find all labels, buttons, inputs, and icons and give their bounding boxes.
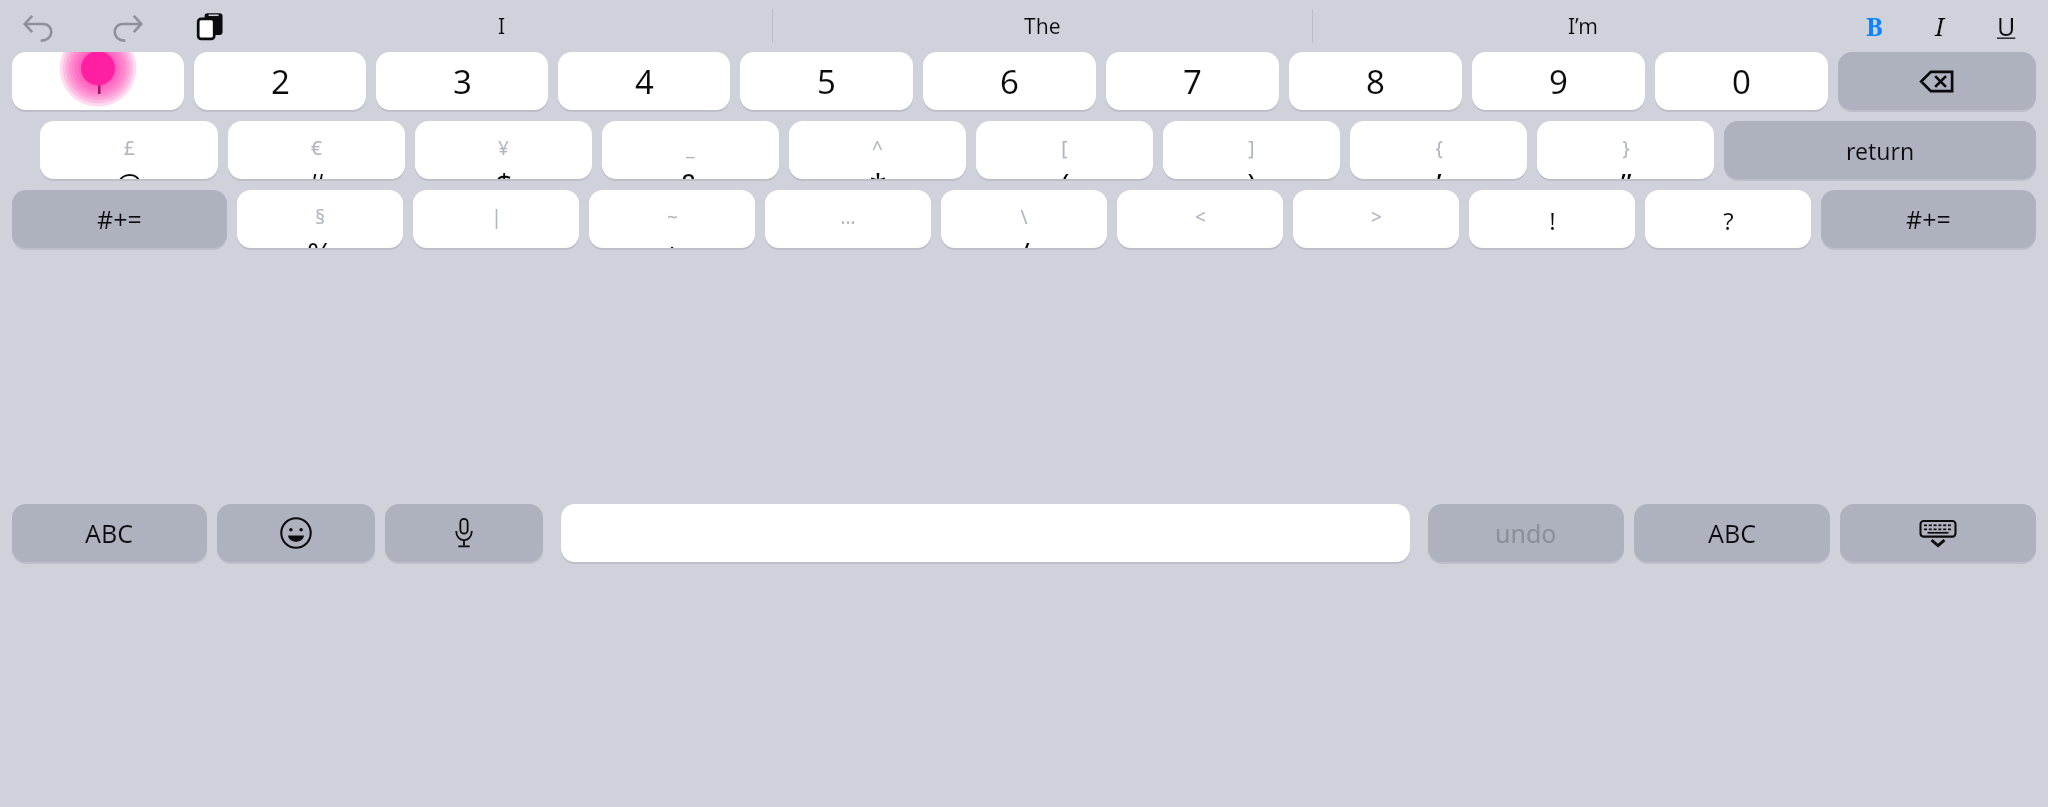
staticText: € — [311, 135, 322, 161]
button[interactable]: | — [413, 190, 579, 248]
staticText: + — [663, 232, 681, 248]
staticText: 7 — [1183, 59, 1202, 104]
staticText: I — [1935, 9, 1945, 43]
button[interactable]: ? — [1645, 190, 1811, 248]
staticText: ’ — [1436, 163, 1442, 179]
button[interactable]: [ — [976, 121, 1153, 179]
button[interactable]: Undo — [18, 5, 60, 47]
staticText: 5 — [817, 59, 836, 104]
button[interactable]: Hide keyboard — [1840, 504, 2036, 562]
button[interactable]: \ — [941, 190, 1107, 248]
staticText: ) — [1247, 163, 1257, 179]
staticText: > — [1371, 204, 1382, 230]
staticText: 2 — [271, 59, 290, 104]
button[interactable]: ABC — [1634, 504, 1830, 562]
staticText: ABC — [1708, 516, 1757, 550]
staticText: £ — [124, 135, 135, 161]
button[interactable]: ! — [1469, 190, 1635, 248]
staticText: ¥ — [498, 135, 509, 161]
staticText: ? — [1723, 204, 1734, 237]
button[interactable]: #+= — [1821, 190, 2036, 248]
button[interactable]: I — [1918, 4, 1962, 48]
staticText: ABC — [85, 516, 134, 550]
staticText: B — [1866, 9, 1883, 43]
staticText: return — [1846, 135, 1915, 166]
button[interactable]: #+= — [12, 190, 227, 248]
staticText: 3 — [453, 59, 472, 104]
staticText: undo — [1495, 516, 1557, 550]
button[interactable]: ^ — [789, 121, 966, 179]
button[interactable]: 9 — [1472, 52, 1645, 110]
staticText: 4 — [635, 59, 654, 104]
button[interactable]: ABC — [12, 504, 207, 562]
button[interactable]: 5 — [740, 52, 913, 110]
staticText: ( — [1060, 163, 1070, 179]
staticText: ~ — [667, 204, 678, 230]
button[interactable]: 0 — [1655, 52, 1828, 110]
staticText: I — [498, 12, 506, 41]
staticText: ! — [1549, 204, 1556, 237]
staticText: ^ — [872, 135, 883, 161]
staticText: } — [1622, 135, 1630, 161]
staticText: ] — [1248, 135, 1255, 161]
button[interactable]: § — [237, 190, 403, 248]
button[interactable]: _ — [602, 121, 779, 179]
staticText: { — [1435, 135, 1443, 161]
staticText: @ — [115, 163, 143, 179]
button[interactable]: 7 — [1106, 52, 1279, 110]
staticText: $ — [495, 163, 513, 179]
button[interactable]: 6 — [923, 52, 1096, 110]
button[interactable]: ] — [1163, 121, 1340, 179]
button[interactable]: I — [232, 0, 772, 52]
button[interactable]: ~ — [589, 190, 755, 248]
staticText: ” — [1620, 163, 1632, 179]
button[interactable]: return — [1724, 121, 2036, 179]
staticText: U — [1997, 9, 2016, 43]
button[interactable]: Voice input — [385, 504, 543, 562]
button[interactable]: Paste — [190, 5, 232, 47]
button[interactable]: 8 — [1289, 52, 1462, 110]
button[interactable]: … — [765, 190, 931, 248]
button[interactable]: < — [1117, 190, 1283, 248]
button[interactable]: B — [1852, 4, 1896, 48]
staticText: #+= — [1906, 202, 1951, 236]
button[interactable]: { — [1350, 121, 1527, 179]
staticText: < — [1195, 204, 1206, 230]
staticText: # — [306, 163, 327, 179]
button[interactable]: U — [1984, 4, 2028, 48]
button[interactable]: £ — [40, 121, 218, 179]
button[interactable]: I’m — [1313, 0, 1852, 52]
staticText: * — [869, 163, 887, 179]
button[interactable]: > — [1293, 190, 1459, 248]
staticText: 9 — [1549, 59, 1568, 104]
button[interactable]: Emoji — [217, 504, 375, 562]
button[interactable]: Redo — [106, 5, 148, 47]
button[interactable]: 4 — [558, 52, 730, 110]
staticText: … — [840, 204, 856, 230]
staticText: #+= — [97, 202, 142, 236]
staticText: 6 — [1000, 59, 1019, 104]
button[interactable]: € — [228, 121, 405, 179]
staticText: 8 — [1366, 59, 1385, 104]
button[interactable]: 1 — [12, 52, 184, 110]
staticText: 1 — [89, 59, 108, 104]
button[interactable]: Backspace — [1838, 52, 2036, 110]
button[interactable]: 3 — [376, 52, 548, 110]
staticText: I’m — [1568, 12, 1598, 41]
staticText: 0 — [1732, 59, 1751, 104]
button[interactable]: undo — [1428, 504, 1624, 562]
staticText: / — [1018, 232, 1030, 248]
staticText: % — [307, 232, 333, 248]
staticText: [ — [1061, 135, 1068, 161]
button[interactable]: } — [1537, 121, 1714, 179]
button[interactable]: 2 — [194, 52, 366, 110]
button[interactable]: ¥ — [415, 121, 592, 179]
staticText: \ — [1020, 204, 1028, 230]
button[interactable]: The — [773, 0, 1312, 52]
